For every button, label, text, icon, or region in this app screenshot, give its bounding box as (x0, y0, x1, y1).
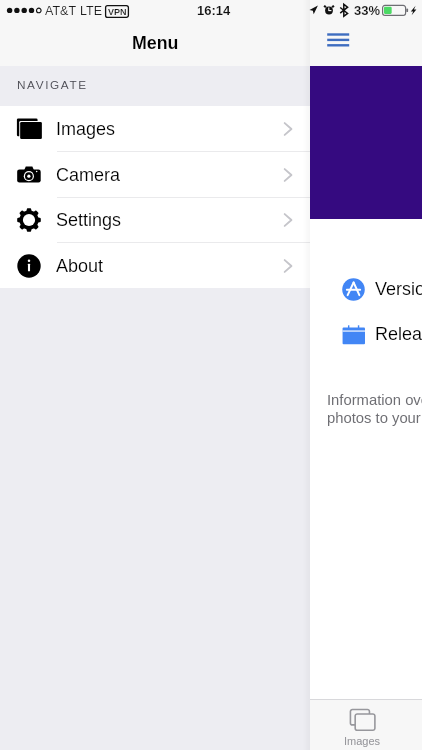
button[interactable]: Settings (0, 197, 310, 243)
staticText: AT&T (45, 4, 77, 18)
button[interactable]: Version (338, 277, 422, 301)
staticText: About (56, 256, 104, 276)
button[interactable]: Images (344, 707, 381, 747)
staticText: Information overlay displayed (327, 392, 422, 409)
button[interactable]: Camera (0, 152, 310, 198)
staticText: photos to your device (327, 410, 422, 427)
staticText: Images (344, 735, 381, 747)
staticText: NAVIGATE (17, 78, 88, 91)
button[interactable]: About (0, 243, 310, 289)
staticText: Settings (56, 210, 122, 230)
button[interactable]: Open navigation menu (323, 29, 353, 51)
staticText: Menu (132, 33, 179, 53)
button[interactable]: Release (338, 322, 422, 346)
staticText: Images (56, 119, 116, 139)
button[interactable]: Images (0, 106, 310, 152)
staticText: Version (375, 279, 422, 299)
staticText: LTE (80, 4, 102, 18)
staticText: VPN (108, 7, 127, 17)
staticText: Camera (56, 165, 121, 185)
staticText: 16:14 (197, 3, 231, 18)
staticText: Release (375, 324, 422, 344)
staticText: 33% (354, 3, 381, 18)
